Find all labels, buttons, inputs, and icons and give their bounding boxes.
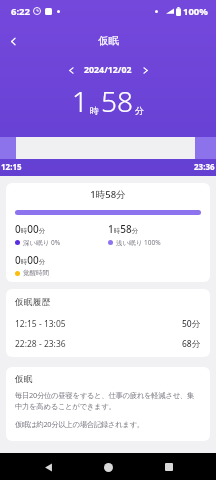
button[interactable]: Back [35,454,61,480]
staticText: 仮眠 [15,374,33,385]
staticText: 58 [101,82,133,120]
button[interactable]: Previous day [63,62,79,78]
staticText: 12:15 - 13:05 [15,318,66,330]
staticText: 時 [90,105,99,116]
staticText: 仮眠 [98,34,119,47]
staticText: 分 [135,105,144,116]
button[interactable]: Recents [156,454,182,480]
staticText: 23:36 [194,161,215,172]
staticText: 1 [72,82,88,120]
staticText: 50分 [182,318,201,330]
button[interactable]: 12:15 - 13:05 [15,318,201,330]
staticText: 0時00分 [15,253,46,267]
button[interactable]: 22:28 - 23:36 [15,338,201,350]
staticText: 深い眠り 0% [23,238,61,247]
button[interactable]: Home [95,454,121,480]
staticText: 0時00分 [15,222,46,236]
staticText: 覚醒時間 [23,269,49,277]
staticText: 仮眠履歴 [15,297,51,308]
staticText: 68分 [182,338,201,350]
staticText: 1時58分 [15,188,201,201]
staticText: 6:22 [11,5,30,18]
staticText: 浅い眠り 100% [116,238,161,247]
button[interactable]: Next day [137,62,153,78]
staticText: 1時58分 [108,222,139,236]
staticText: 12:15 [1,161,22,172]
staticText: 100% [183,5,208,18]
staticText: 2024/12/02 [84,64,132,76]
staticText: 毎日20分位の昼寝をすると、仕事の疲れを軽減させ、集中力を高めることができます。 [15,390,201,411]
staticText: 仮眠は約20分以上の場合記録されます。 [15,419,144,429]
button[interactable]: Back [1,29,25,53]
staticText: 22:28 - 23:36 [15,338,66,350]
